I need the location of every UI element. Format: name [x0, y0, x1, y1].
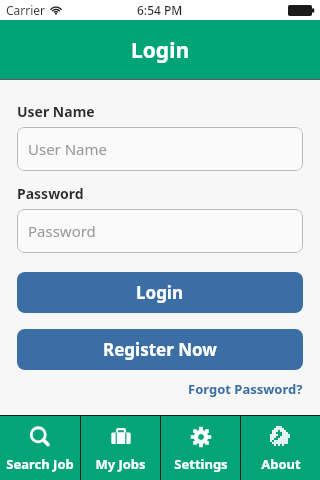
staticText: Search Job [6, 455, 74, 473]
button[interactable]: My Jobs [81, 416, 160, 480]
staticText: Carrier [6, 2, 46, 18]
button[interactable]: About [241, 416, 320, 480]
staticText: Login [136, 281, 184, 304]
staticText: Forgot Password? [188, 380, 303, 398]
staticText: Register Now [103, 338, 217, 361]
staticText: Login [131, 36, 190, 65]
button[interactable]: Settings [161, 416, 240, 480]
staticText: Password [28, 221, 96, 241]
staticText: 6:54 PM [137, 2, 183, 18]
staticText: User Name [17, 102, 95, 121]
button[interactable]: Search Job [0, 416, 80, 480]
button[interactable]: User Name [17, 127, 303, 171]
button[interactable]: Forgot Password? [186, 379, 305, 399]
staticText: User Name [28, 139, 108, 159]
button[interactable]: Login [17, 272, 303, 313]
button[interactable]: Password [17, 209, 303, 253]
staticText: Settings [174, 455, 228, 473]
staticText: About [261, 455, 301, 473]
staticText: Password [17, 184, 84, 203]
staticText: My Jobs [95, 455, 146, 473]
button[interactable]: Register Now [17, 329, 303, 370]
